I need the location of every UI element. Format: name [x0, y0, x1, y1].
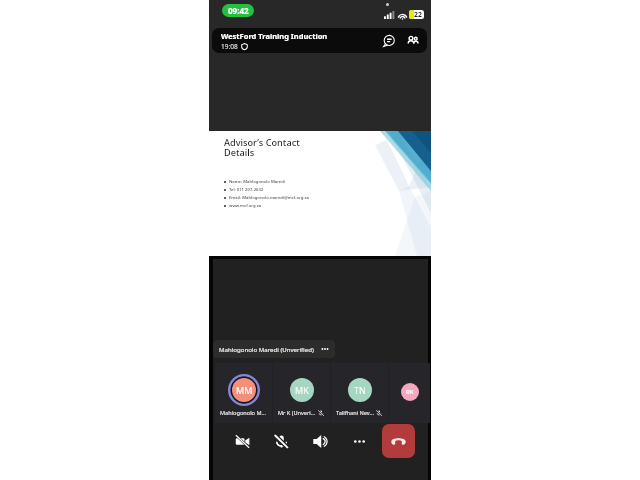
- staticText: 22: [414, 10, 422, 19]
- staticText: Talifhani Nev...: [336, 409, 374, 417]
- staticText: MM: [236, 384, 253, 396]
- staticText: www.mcf.org.za: [229, 203, 262, 209]
- staticText: Tel: 011 207-2632: [229, 187, 264, 193]
- button[interactable]: TN: [331, 363, 388, 423]
- button[interactable]: MK: [273, 363, 330, 423]
- button[interactable]: More options: [349, 431, 369, 451]
- staticText: Email: Mahlogonolo.maredi@mcf.org.za: [229, 195, 309, 201]
- staticText: 19:08: [221, 42, 238, 51]
- staticText: Mahlogonolo Maredi (Unverified): [219, 345, 314, 353]
- button[interactable]: Speaker: [310, 431, 330, 451]
- button[interactable]: End call: [382, 424, 415, 458]
- staticText: MK: [295, 384, 309, 396]
- button[interactable]: Camera off: [232, 431, 252, 451]
- staticText: Advisor’s Contact Details: [224, 136, 300, 158]
- staticText: Mr K (Unveri...: [278, 409, 316, 417]
- button[interactable]: Chat: [379, 31, 398, 50]
- button[interactable]: Participants: [403, 31, 422, 50]
- staticText: TN: [354, 384, 366, 396]
- staticText: 09:42: [228, 5, 249, 16]
- button[interactable]: MM: [215, 363, 272, 423]
- staticText: Name: Mahlogonolo Maredi: [229, 179, 285, 185]
- button[interactable]: WestFord Training Induction: [212, 28, 427, 53]
- staticText: WestFord Training Induction: [221, 31, 328, 41]
- button[interactable]: Mahlogonolo Maredi (Unverified): [213, 340, 335, 358]
- button[interactable]: Microphone off: [271, 431, 291, 451]
- staticText: Mahlogonolo M...: [220, 409, 267, 417]
- staticText: RK: [406, 388, 414, 396]
- button[interactable]: RK: [389, 363, 430, 423]
